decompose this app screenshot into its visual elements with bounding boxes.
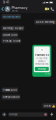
button[interactable]: Message (8, 112, 48, 117)
button[interactable]: Message (35, 67, 49, 71)
staticText: Prescriptions (35, 63, 48, 66)
staticText: Good morning (36, 20, 55, 24)
staticText: Pharmacy (12, 6, 28, 10)
button[interactable]: Back (0, 6, 10, 12)
staticText: 9:41 (3, 1, 9, 4)
staticText: Pharmacy Rx (35, 54, 49, 57)
staticText: Order 4417 (3, 33, 17, 37)
button[interactable]: Record voice message (50, 112, 54, 117)
staticText: Message (9, 113, 17, 116)
button[interactable]: Attach (2, 112, 6, 117)
staticText: online (12, 10, 18, 12)
staticText: Message (38, 68, 46, 70)
button[interactable]: Voice call (50, 7, 56, 11)
staticText: Pick up today (3, 39, 20, 42)
button[interactable]: Video call (44, 7, 50, 11)
staticText: Great 👍 (44, 104, 55, 107)
staticText: See you soon (3, 95, 19, 99)
staticText: Mobile (38, 60, 45, 63)
button[interactable]: Pharmacy (10, 6, 28, 12)
staticText: Thanks a lot (3, 88, 17, 92)
staticText: +1 555 0142 (36, 57, 47, 60)
staticText: Morning! Ready (3, 27, 23, 30)
staticText: 12:04 (45, 73, 50, 75)
staticText: wa.me/rxpharm (3, 15, 20, 18)
